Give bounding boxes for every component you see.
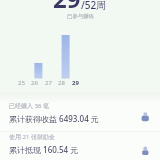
staticText: 累计获得收益 6493.04 元 [9,113,99,124]
staticText: /52周 [81,0,107,12]
staticText: 26 [31,79,38,87]
staticText: 已参与赚钱 [67,13,94,20]
staticText: 累计抵现 160.54 元 [9,144,79,155]
staticText: 使用 21 张鼓励金 [9,133,55,141]
staticText: 29 [72,79,79,87]
staticText: 27 [45,79,52,87]
staticText: 已经赚入 36 笔 [9,102,49,110]
staticText: 29 [53,0,81,15]
staticText: 25 [18,79,25,87]
staticText: 28 [58,79,65,87]
